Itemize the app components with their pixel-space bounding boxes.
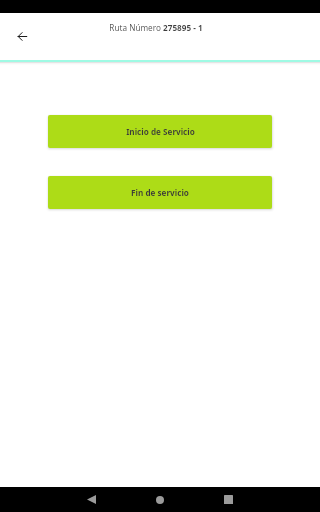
- button[interactable]: Back: [12, 26, 33, 47]
- button[interactable]: Home: [140, 487, 180, 512]
- staticText: Ruta Número 275895 - 1: [109, 22, 203, 33]
- button[interactable]: Back: [71, 487, 111, 512]
- button[interactable]: Fin de servicio: [48, 176, 272, 209]
- button[interactable]: Inicio de Servicio: [48, 115, 272, 148]
- staticText: Inicio de Servicio: [126, 126, 195, 137]
- staticText: Fin de servicio: [131, 187, 189, 198]
- button[interactable]: Recent apps: [208, 487, 248, 512]
